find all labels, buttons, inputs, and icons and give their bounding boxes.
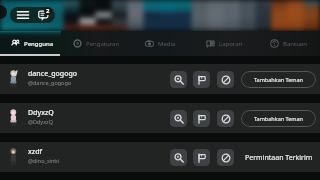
button[interactable]: Menu <box>17 10 29 20</box>
staticText: DdyxzQ <box>28 108 54 118</box>
staticText: @dino_sinbi <box>28 157 60 164</box>
button[interactable]: Search <box>170 149 187 166</box>
staticText: 2 <box>46 7 50 15</box>
button[interactable]: Messages <box>38 8 51 22</box>
button[interactable]: Report <box>193 149 210 166</box>
button[interactable]: Pengguna <box>0 31 64 56</box>
button[interactable]: Block <box>217 71 234 88</box>
button[interactable]: Laporan <box>192 31 256 56</box>
button[interactable]: Pengaturan <box>64 31 128 56</box>
button[interactable]: xzdf <box>0 142 320 172</box>
button[interactable]: Tambahkan Teman <box>241 71 316 88</box>
button[interactable]: DdyxzQ <box>0 103 320 133</box>
staticText: @DdyxzQ <box>28 118 53 125</box>
button[interactable]: Tambahkan Teman <box>241 110 316 127</box>
staticText: Pengguna <box>24 40 54 48</box>
staticText: Laporan <box>219 40 243 48</box>
button[interactable]: Search <box>170 71 187 88</box>
staticText: Bantuan <box>283 40 307 48</box>
button[interactable]: Report <box>193 71 210 88</box>
button[interactable]: Report <box>193 110 210 127</box>
staticText: Tambahkan Teman <box>254 76 303 83</box>
staticText: Media <box>158 40 176 48</box>
button[interactable]: Bantuan <box>256 31 320 56</box>
button[interactable]: Block <box>217 110 234 127</box>
button[interactable]: Block <box>217 149 234 166</box>
staticText: Tambahkan Teman <box>254 115 303 122</box>
button[interactable]: Search <box>170 110 187 127</box>
staticText: dance_gogogo <box>28 69 78 79</box>
button[interactable]: Media <box>128 31 192 56</box>
button[interactable]: Permintaan Terkirim <box>241 149 316 166</box>
staticText: @dance_gogogo <box>28 79 72 86</box>
staticText: Permintaan Terkirim <box>245 153 313 163</box>
button[interactable]: dance_gogogo <box>0 64 320 94</box>
staticText: Pengaturan <box>86 40 120 48</box>
staticText: xzdf <box>28 147 42 157</box>
